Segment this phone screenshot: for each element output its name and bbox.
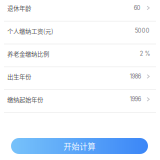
button[interactable]: 养老金缴纳比例 xyxy=(0,44,160,67)
button[interactable]: 开始计算 xyxy=(11,138,148,154)
staticText: 2 % xyxy=(140,50,150,57)
staticText: 开始计算 xyxy=(63,140,95,152)
staticText: 60 xyxy=(134,4,141,11)
button[interactable]: 出生年份 xyxy=(0,67,160,90)
staticText: 1986 xyxy=(130,73,141,80)
button[interactable]: 退休年龄 xyxy=(0,0,160,21)
staticText: 5000 xyxy=(135,27,150,34)
button[interactable]: 缴纳起始年份 xyxy=(0,90,160,113)
button[interactable]: 个人缴纳工资(元) xyxy=(0,21,160,44)
staticText: 1996 xyxy=(130,96,141,103)
staticText: 缴纳起始年份 xyxy=(7,95,43,104)
staticText: 出生年份 xyxy=(7,72,31,81)
staticText: 个人缴纳工资(元) xyxy=(7,26,53,35)
staticText: 退休年龄 xyxy=(7,4,31,12)
staticText: 养老金缴纳比例 xyxy=(7,49,49,58)
